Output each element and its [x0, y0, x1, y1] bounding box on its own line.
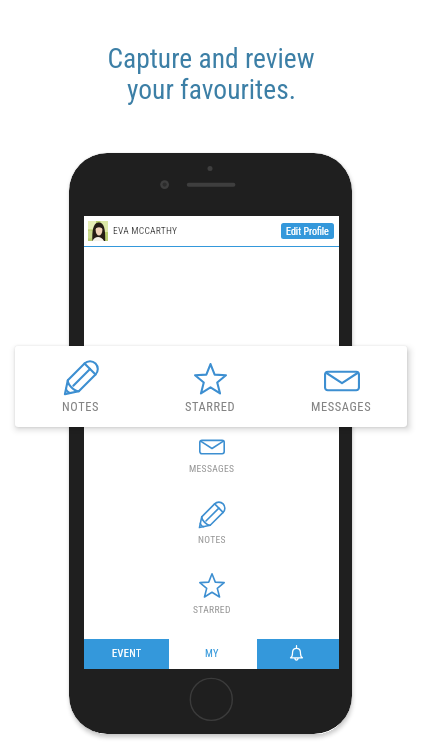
- button[interactable]: MESSAGES: [84, 434, 339, 480]
- staticText: NOTES: [198, 534, 226, 545]
- button[interactable]: NOTES: [15, 346, 145, 427]
- button[interactable]: EVENT: [84, 639, 169, 669]
- button[interactable]: NOTES: [84, 502, 339, 548]
- staticText: MY: [205, 647, 219, 659]
- staticText: STARRED: [193, 604, 231, 615]
- button[interactable]: MY: [169, 639, 257, 669]
- staticText: EVA MCCARTHY: [113, 225, 178, 236]
- staticText: MESSAGES: [311, 399, 372, 414]
- staticText: your favourites.: [127, 73, 296, 105]
- button[interactable]: STARRED: [84, 573, 339, 619]
- staticText: Edit Profile: [286, 226, 329, 238]
- staticText: EVENT: [112, 647, 142, 659]
- button[interactable]: Edit Profile: [281, 223, 334, 239]
- button[interactable]: MESSAGES: [276, 346, 407, 427]
- staticText: Capture and review: [107, 42, 315, 74]
- staticText: STARRED: [185, 399, 236, 414]
- staticText: NOTES: [62, 399, 99, 414]
- button[interactable]: Notifications: [257, 639, 339, 669]
- button[interactable]: STARRED: [145, 346, 276, 427]
- staticText: MESSAGES: [189, 463, 235, 474]
